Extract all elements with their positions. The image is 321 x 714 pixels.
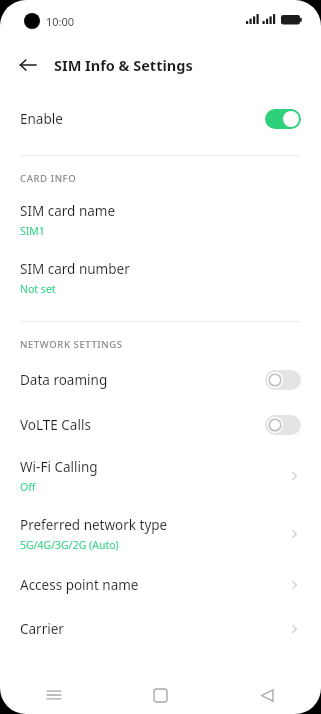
- button[interactable]: Enable: [265, 109, 301, 129]
- button[interactable]: Back: [214, 676, 321, 714]
- staticText: 5G/4G/3G/2G (Auto): [20, 538, 119, 552]
- staticText: Not set: [20, 282, 56, 296]
- button[interactable]: Preferred network type: [0, 505, 321, 563]
- staticText: CARD INFO: [20, 172, 77, 185]
- staticText: Carrier: [20, 620, 287, 638]
- staticText: VoLTE Calls: [20, 416, 265, 434]
- staticText: Preferred network type: [20, 516, 168, 534]
- button[interactable]: SIM card number: [0, 249, 321, 307]
- staticText: Access point name: [20, 576, 287, 594]
- button[interactable]: Carrier: [0, 607, 321, 651]
- button[interactable]: Back: [12, 49, 44, 81]
- button[interactable]: Enable: [0, 95, 321, 143]
- button[interactable]: Access point name: [0, 563, 321, 607]
- button[interactable]: Data roaming: [0, 357, 321, 402]
- staticText: NETWORK SETTINGS: [20, 338, 123, 351]
- button[interactable]: Toggle: [265, 415, 301, 435]
- button[interactable]: SIM card name: [0, 191, 321, 249]
- staticText: Enable: [20, 110, 63, 128]
- staticText: SIM card name: [20, 202, 116, 220]
- button[interactable]: Home: [107, 676, 214, 714]
- button[interactable]: Wi-Fi Calling: [0, 447, 321, 505]
- staticText: Wi-Fi Calling: [20, 458, 98, 476]
- staticText: SIM1: [20, 224, 45, 238]
- staticText: Data roaming: [20, 371, 265, 389]
- staticText: Off: [20, 480, 36, 494]
- button[interactable]: VoLTE Calls: [0, 402, 321, 447]
- button[interactable]: Toggle: [265, 370, 301, 390]
- staticText: 10:00: [46, 14, 75, 29]
- staticText: SIM card number: [20, 260, 130, 278]
- button[interactable]: Recent apps: [0, 676, 107, 714]
- staticText: SIM Info & Settings: [54, 55, 193, 75]
